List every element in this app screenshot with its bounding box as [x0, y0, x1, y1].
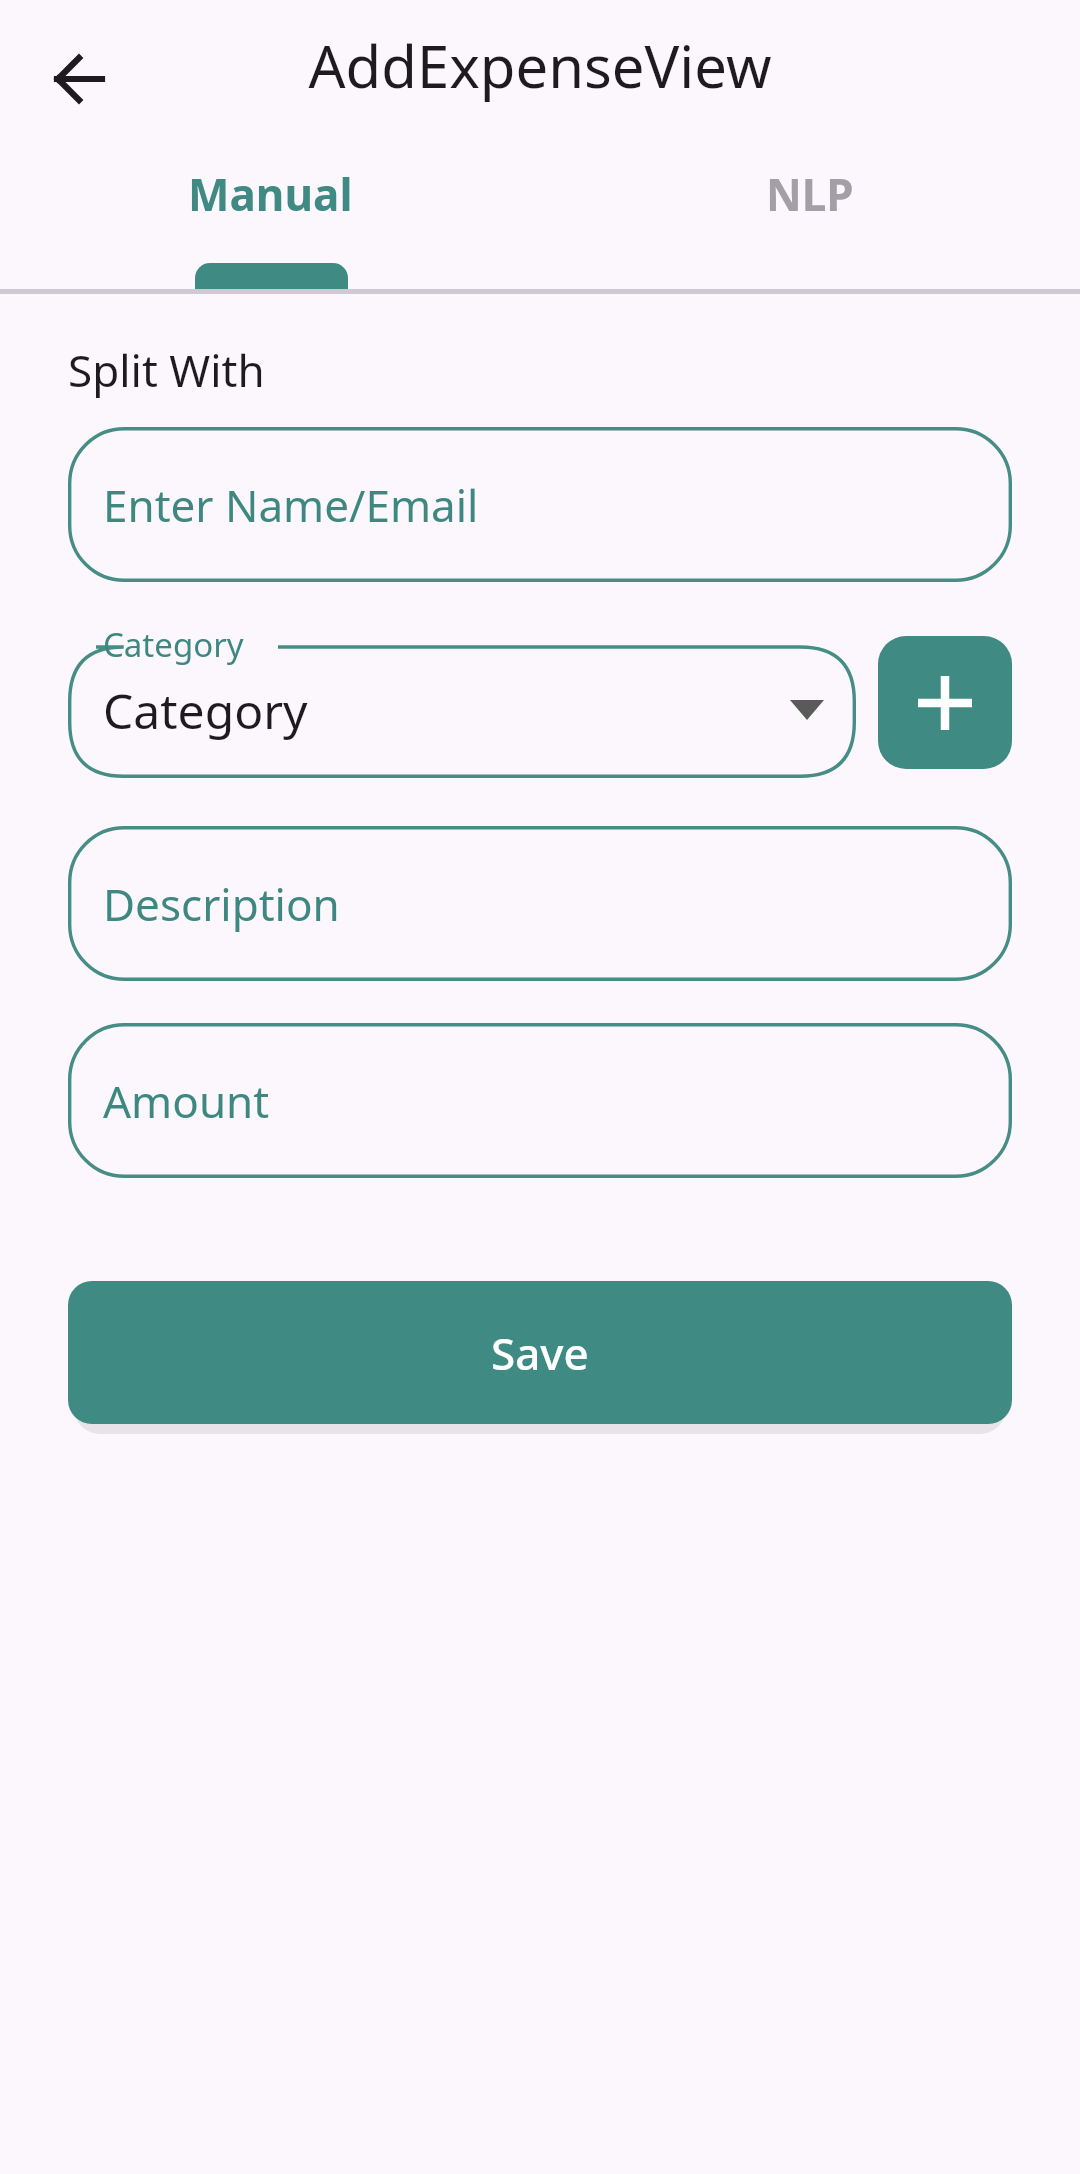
staticText: Category [103, 622, 244, 667]
button[interactable]: NLP [540, 132, 1080, 302]
staticText: Enter Name/Email [103, 475, 479, 535]
button[interactable]: Amount [68, 1023, 1012, 1178]
button[interactable]: Manual [0, 132, 540, 302]
staticText: Split With [68, 340, 265, 400]
button[interactable]: Category [68, 626, 856, 778]
button[interactable]: Save [68, 1281, 1012, 1424]
staticText: Save [491, 1323, 589, 1383]
staticText: NLP [766, 164, 854, 224]
button[interactable]: Description [68, 826, 1012, 981]
button[interactable]: Enter Name/Email [68, 427, 1012, 582]
staticText: Description [103, 874, 340, 934]
staticText: Amount [103, 1071, 270, 1131]
button[interactable]: Back [30, 31, 126, 127]
staticText: Category [103, 678, 308, 743]
button[interactable]: Add category [878, 636, 1012, 769]
staticText: Manual [188, 164, 353, 224]
staticText: AddExpenseView [0, 26, 1080, 105]
